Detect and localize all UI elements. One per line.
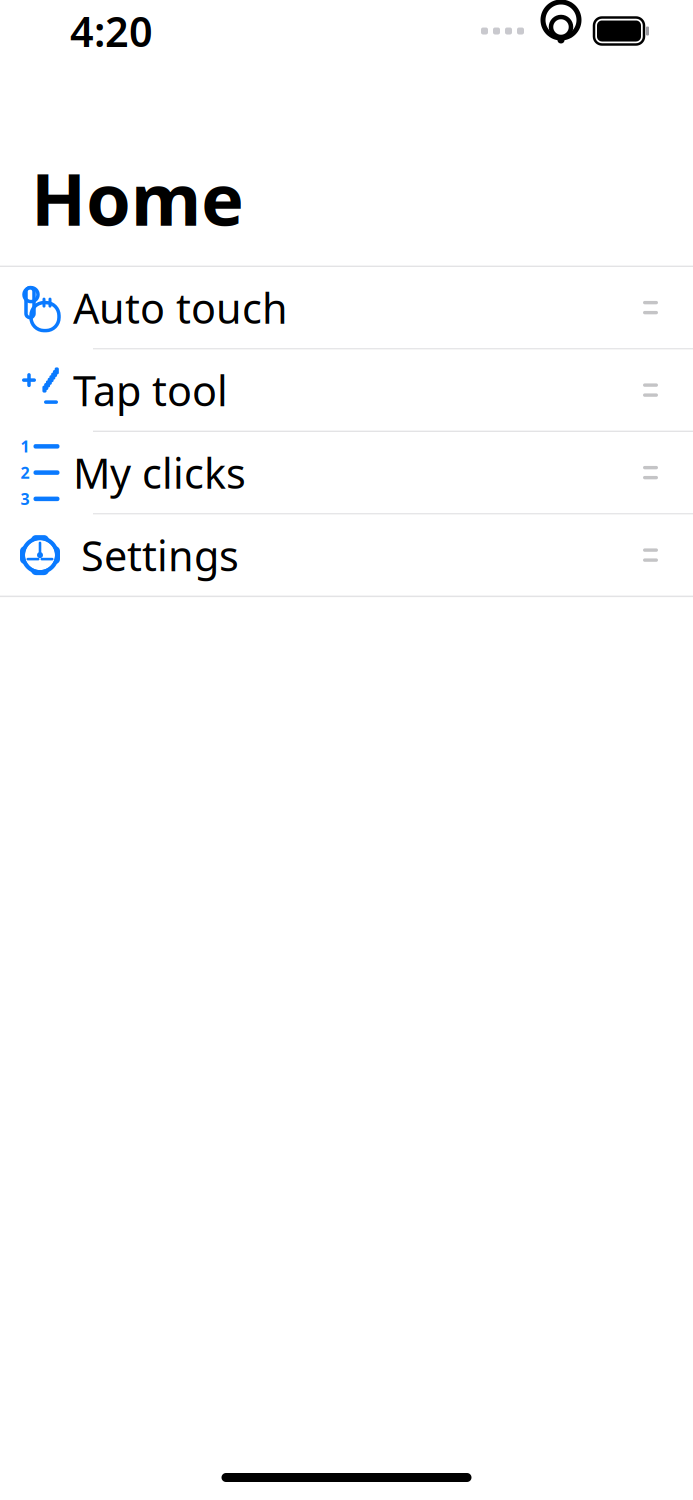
staticText: 4:20 — [70, 4, 153, 58]
button[interactable]: Settings — [0, 515, 693, 596]
staticText: 2 — [20, 462, 29, 483]
button[interactable]: 1 — [0, 432, 693, 513]
staticText: 3 — [20, 488, 29, 509]
staticText: 1 — [20, 436, 29, 457]
staticText: Tap tool — [73, 363, 228, 418]
button[interactable]: Auto touch — [0, 267, 693, 348]
staticText: Settings — [81, 528, 239, 583]
staticText: Auto touch — [73, 280, 288, 335]
button[interactable]: Tap tool — [0, 350, 693, 431]
staticText: My clicks — [73, 445, 246, 500]
staticText: Home — [31, 150, 244, 246]
